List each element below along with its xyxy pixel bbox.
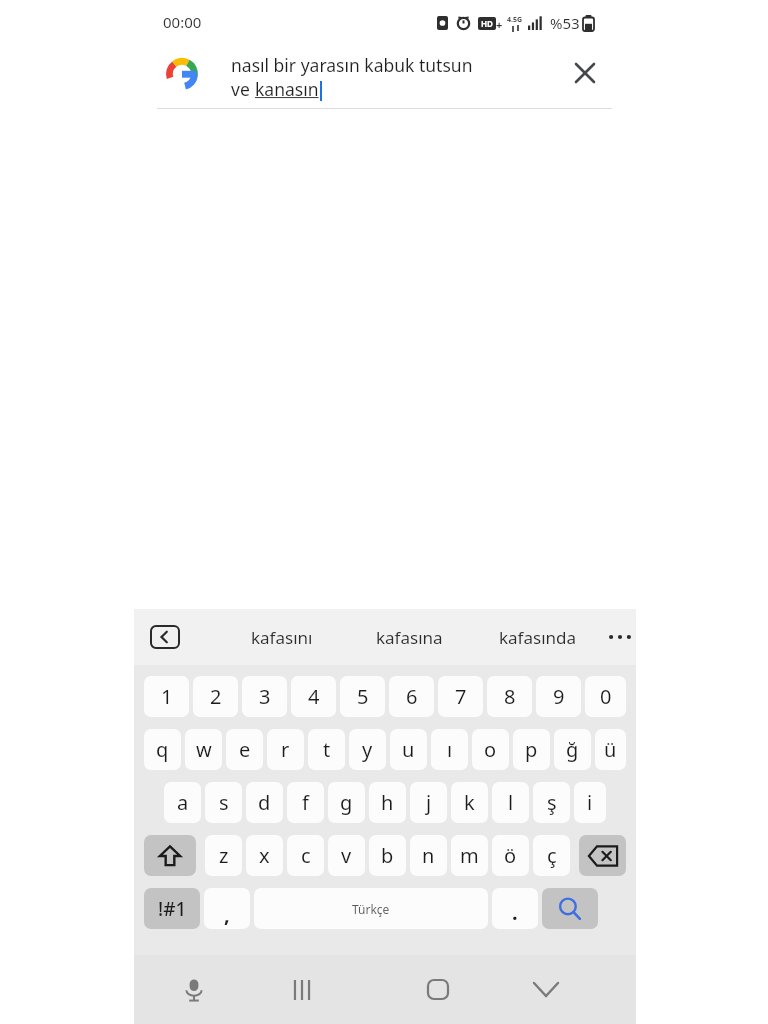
button[interactable]: Voice input <box>140 955 248 1024</box>
button[interactable]: v <box>328 835 365 876</box>
staticText: 4 <box>308 683 320 710</box>
button[interactable]: y <box>349 729 386 770</box>
button[interactable]: w <box>185 729 222 770</box>
staticText: , <box>224 901 230 928</box>
button[interactable]: 1 <box>144 676 189 717</box>
button[interactable]: Previous suggestions <box>148 623 182 651</box>
button[interactable]: b <box>369 835 406 876</box>
button[interactable]: 3 <box>242 676 287 717</box>
button[interactable]: 6 <box>389 676 434 717</box>
button[interactable]: kafasına <box>346 609 472 665</box>
button[interactable]: z <box>205 835 242 876</box>
button[interactable]: Recent apps <box>248 955 356 1024</box>
button[interactable]: ü <box>595 729 626 770</box>
staticText: d <box>258 789 271 816</box>
button[interactable]: 4 <box>291 676 336 717</box>
button[interactable]: g <box>328 782 365 823</box>
button[interactable]: 7 <box>438 676 483 717</box>
staticText: kafasında <box>499 626 577 649</box>
staticText: 1 <box>161 683 173 710</box>
staticText: ı <box>447 736 453 763</box>
button[interactable]: n <box>410 835 447 876</box>
staticText: i <box>587 789 593 816</box>
staticText: w <box>196 736 212 763</box>
staticText: . <box>512 899 518 926</box>
staticText: ü <box>604 736 617 763</box>
staticText: f <box>302 789 309 816</box>
button[interactable]: t <box>308 729 345 770</box>
button[interactable]: Home <box>384 955 492 1024</box>
button[interactable]: k <box>451 782 488 823</box>
staticText: u <box>402 736 415 763</box>
staticText: kanasın <box>255 77 319 101</box>
button[interactable]: Türkçe <box>254 888 488 929</box>
staticText: q <box>156 736 169 763</box>
button[interactable]: kafasını <box>218 609 346 665</box>
button[interactable]: kafasında <box>472 609 604 665</box>
staticText: + <box>496 17 503 30</box>
staticText: !#1 <box>158 896 187 922</box>
button[interactable]: j <box>410 782 447 823</box>
staticText: v <box>341 842 352 869</box>
button[interactable]: l <box>492 782 529 823</box>
button[interactable]: a <box>164 782 201 823</box>
button[interactable]: Search <box>542 888 598 929</box>
staticText: p <box>525 736 538 763</box>
staticText: e <box>239 736 251 763</box>
button[interactable]: ç <box>533 835 570 876</box>
staticText: 2 <box>210 683 222 710</box>
button[interactable]: 8 <box>487 676 532 717</box>
button[interactable]: x <box>246 835 283 876</box>
staticText: z <box>219 842 229 869</box>
button[interactable]: 5 <box>340 676 385 717</box>
staticText: 3 <box>259 683 271 710</box>
button[interactable]: ş <box>533 782 570 823</box>
staticText: ş <box>547 789 557 816</box>
staticText: j <box>426 789 432 816</box>
button[interactable]: d <box>246 782 283 823</box>
staticText: ğ <box>566 736 579 763</box>
staticText: 00:00 <box>163 12 202 32</box>
button[interactable]: h <box>369 782 406 823</box>
staticText: ç <box>547 842 557 869</box>
button[interactable]: , <box>204 888 250 929</box>
button[interactable]: 9 <box>536 676 581 717</box>
staticText: HD <box>481 18 493 29</box>
button[interactable]: m <box>451 835 488 876</box>
button[interactable]: i <box>574 782 606 823</box>
staticText: y <box>362 736 373 763</box>
button[interactable]: s <box>205 782 242 823</box>
button[interactable]: u <box>390 729 427 770</box>
staticText: o <box>484 736 497 763</box>
button[interactable]: More suggestions <box>604 609 636 665</box>
button[interactable]: ı <box>431 729 468 770</box>
button[interactable]: Hide keyboard <box>492 955 600 1024</box>
button[interactable]: ö <box>492 835 529 876</box>
button[interactable]: !#1 <box>144 888 200 929</box>
button[interactable]: Shift <box>144 835 196 876</box>
button[interactable]: Google <box>165 57 199 91</box>
button[interactable]: e <box>226 729 263 770</box>
staticText: ö <box>504 842 517 869</box>
staticText: r <box>281 736 290 763</box>
staticText: s <box>219 789 229 816</box>
button[interactable]: r <box>267 729 304 770</box>
staticText: h <box>381 789 394 816</box>
button[interactable]: Backspace <box>579 835 626 876</box>
staticText: l <box>508 789 514 816</box>
staticText: k <box>464 789 475 816</box>
button[interactable]: Clear <box>563 51 607 95</box>
button[interactable]: f <box>287 782 324 823</box>
button[interactable]: q <box>144 729 181 770</box>
staticText: kafasını <box>251 626 313 649</box>
staticText: 6 <box>406 683 418 710</box>
button[interactable]: ğ <box>554 729 591 770</box>
staticText: 4.5G <box>507 15 523 25</box>
staticText: 8 <box>504 683 516 710</box>
button[interactable]: o <box>472 729 509 770</box>
button[interactable]: c <box>287 835 324 876</box>
button[interactable]: 2 <box>193 676 238 717</box>
button[interactable]: p <box>513 729 550 770</box>
button[interactable]: . <box>492 888 538 929</box>
button[interactable]: 0 <box>585 676 626 717</box>
